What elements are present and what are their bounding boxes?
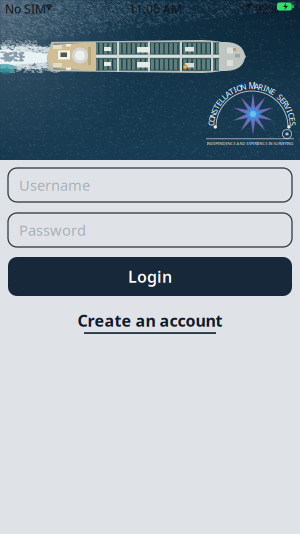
staticText: T <box>229 86 233 97</box>
staticText: INDEPENDENCE AND EXPERIENCE IN SURVEYING <box>206 141 293 146</box>
staticText: I <box>263 83 266 93</box>
staticText: No SIM <box>5 1 46 17</box>
staticText: N <box>210 110 216 120</box>
staticText: N <box>240 82 246 92</box>
staticText: R <box>283 98 288 109</box>
staticText: A <box>225 89 230 99</box>
staticText: V <box>285 102 290 112</box>
staticText: E <box>271 86 275 97</box>
staticText: L <box>222 91 226 102</box>
staticText: S <box>278 91 282 102</box>
staticText: O <box>236 83 242 93</box>
staticText: C <box>209 118 214 129</box>
staticText: T <box>214 102 218 112</box>
button[interactable]: Username <box>0 168 300 202</box>
staticText: S <box>291 118 295 129</box>
button[interactable]: Login <box>0 257 300 296</box>
staticText: N <box>266 84 272 95</box>
staticText: M <box>248 81 255 91</box>
staticText: I <box>288 105 291 116</box>
staticText: I <box>234 84 237 95</box>
staticText: Username <box>19 175 90 195</box>
staticText: O <box>209 114 215 124</box>
staticText: A <box>254 81 259 91</box>
button[interactable]: Create an account <box>63 308 236 336</box>
button[interactable]: Password <box>0 213 300 247</box>
staticText: Login <box>128 266 172 287</box>
staticText: 92% <box>255 1 279 17</box>
staticText: E <box>217 98 221 109</box>
staticText <box>275 89 277 99</box>
staticText: C <box>289 110 294 120</box>
staticText: 11:05 AM <box>129 1 182 17</box>
staticText <box>247 81 249 91</box>
staticText: E <box>281 95 285 105</box>
staticText: E <box>290 114 294 124</box>
staticText: R <box>258 82 263 92</box>
staticText: Create an account <box>77 310 222 331</box>
staticText: L <box>219 95 223 105</box>
staticText: Password <box>19 220 86 240</box>
staticText: S <box>212 105 216 116</box>
